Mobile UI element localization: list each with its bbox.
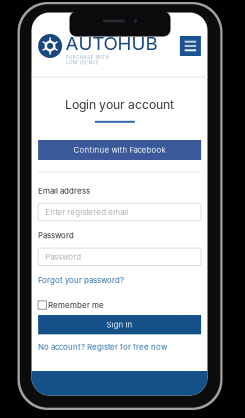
staticText: Enter registered email: [45, 207, 128, 217]
staticText: AUTOHUB: [65, 32, 157, 54]
staticText: Continue with Facebook: [74, 145, 166, 155]
staticText: Remember me: [48, 300, 104, 310]
staticText: No account? Register for free now: [38, 342, 167, 352]
staticText: Email address: [38, 186, 90, 196]
staticText: Password: [45, 252, 81, 261]
staticText: Sign In: [107, 320, 133, 329]
button[interactable]: Forgot your password?: [38, 275, 124, 285]
button[interactable]: Continue with Facebook: [38, 140, 201, 160]
staticText: Password: [38, 231, 74, 240]
button[interactable]: Open menu: [180, 36, 201, 56]
button[interactable]: Sign In: [38, 315, 201, 334]
staticText: Forgot your password?: [38, 275, 124, 285]
button[interactable]: Remember me: [38, 300, 104, 310]
button[interactable]: No account? Register for free now: [38, 342, 167, 352]
staticText: PURCHASE WITH CONFIDENCE: [65, 55, 145, 60]
staticText: Login your account: [65, 97, 174, 112]
